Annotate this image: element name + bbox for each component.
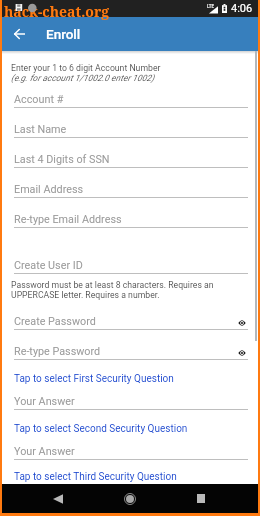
button[interactable]: Show password — [238, 348, 246, 356]
button[interactable]: Tap to select First Security Question — [2, 360, 258, 386]
staticText: Re-type Email Address — [14, 213, 248, 226]
staticText: LTE — [207, 4, 215, 9]
button[interactable]: Back — [2, 17, 36, 51]
button[interactable]: Create User ID — [2, 228, 258, 274]
staticText: Your Answer — [14, 445, 248, 458]
button[interactable]: Tap to select Third Security Question — [2, 460, 258, 484]
staticText: Tap to select First Security Question — [14, 373, 174, 385]
button[interactable]: Tap to select Second Security Question — [2, 410, 258, 436]
button[interactable]: Email Address — [2, 168, 258, 198]
staticText: Tap to select Second Security Question — [14, 423, 188, 435]
staticText: Your Answer — [14, 395, 248, 408]
staticText: Create Password — [14, 315, 238, 328]
button[interactable]: Home — [110, 484, 150, 513]
staticText: Create User ID — [14, 259, 248, 272]
staticText: Enroll — [46, 26, 81, 42]
staticText: Tap to select Third Security Question — [14, 471, 177, 483]
staticText: Last 4 Digits of SSN — [14, 153, 248, 166]
staticText: Enter your 1 to 6 digit Account Number — [11, 63, 161, 73]
button[interactable]: Recent apps — [181, 484, 221, 513]
staticText: Re-type Password — [14, 345, 238, 358]
button[interactable]: Account # — [2, 87, 258, 108]
staticText: Account # — [14, 93, 248, 106]
button[interactable]: Back — [38, 484, 78, 513]
button[interactable]: Last Name — [2, 108, 258, 138]
staticText: hack-cheat.org — [4, 2, 110, 21]
button[interactable]: Create Password — [2, 300, 258, 330]
button[interactable]: Your Answer — [2, 436, 258, 460]
button[interactable]: Re-type Email Address — [2, 198, 258, 228]
staticText: Email Address — [14, 183, 248, 196]
staticText: 4:06 — [231, 2, 253, 15]
button[interactable]: Last 4 Digits of SSN — [2, 138, 258, 168]
staticText: Last Name — [14, 123, 248, 136]
staticText: (e.g. for account 1/1002.0 enter 1002) — [11, 73, 155, 83]
button[interactable]: Re-type Password — [2, 330, 258, 360]
button[interactable]: Show password — [238, 318, 246, 326]
button[interactable]: Your Answer — [2, 386, 258, 410]
staticText: Password must be at least 8 characters. … — [11, 280, 248, 300]
